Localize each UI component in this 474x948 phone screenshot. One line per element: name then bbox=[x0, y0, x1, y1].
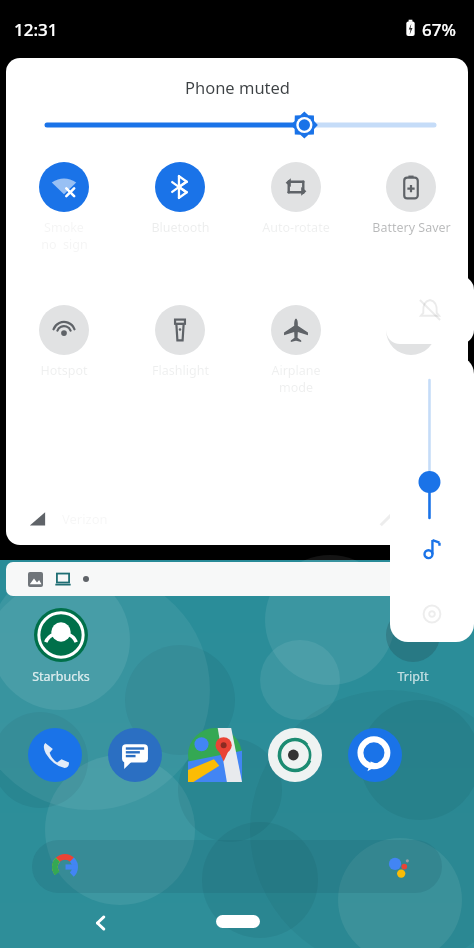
button[interactable]: Messages bbox=[108, 728, 162, 782]
staticText: 67% bbox=[422, 18, 456, 41]
staticText: Starbucks bbox=[32, 668, 90, 685]
button[interactable]: Auto-rotate bbox=[238, 162, 354, 236]
button[interactable]: Airplane mode bbox=[238, 305, 354, 396]
button[interactable]: Media output bbox=[418, 534, 446, 562]
button[interactable]: Notifications bbox=[6, 562, 468, 596]
button[interactable]: Home bbox=[216, 915, 260, 928]
button[interactable]: Do not disturb bbox=[354, 305, 468, 396]
staticText: TripIt bbox=[397, 668, 429, 685]
button[interactable]: Ringer mode muted bbox=[386, 276, 474, 344]
button[interactable]: Sound settings bbox=[420, 602, 444, 626]
button[interactable]: Search bbox=[32, 840, 442, 893]
button[interactable]: TripIt bbox=[380, 608, 446, 685]
staticText: 12:31 bbox=[14, 18, 58, 41]
button[interactable]: Brightness bbox=[6, 110, 468, 140]
staticText: disturb bbox=[390, 379, 432, 396]
button[interactable]: Media volume bbox=[390, 356, 474, 556]
staticText: mode bbox=[279, 379, 313, 396]
button[interactable]: Battery Saver bbox=[354, 162, 468, 236]
staticText: Phone muted bbox=[185, 76, 290, 98]
staticText: Auto-rotate bbox=[262, 219, 330, 236]
button[interactable]: Hotspot bbox=[6, 305, 122, 379]
staticText: Battery Saver bbox=[372, 219, 451, 236]
button[interactable]: WiFi off bbox=[6, 162, 122, 253]
staticText: Bluetooth bbox=[151, 219, 210, 236]
button[interactable]: Call recorder bbox=[268, 728, 322, 782]
staticText: Flashlight bbox=[152, 362, 209, 379]
button[interactable]: Phone bbox=[28, 728, 82, 782]
button[interactable]: Bluetooth bbox=[122, 162, 238, 236]
button[interactable]: Starbucks bbox=[28, 608, 94, 685]
button[interactable]: Flashlight bbox=[122, 305, 238, 379]
staticText: Hotspot bbox=[40, 362, 88, 379]
button[interactable]: Back bbox=[86, 908, 116, 938]
button[interactable]: Duo bbox=[348, 728, 402, 782]
button[interactable]: Maps bbox=[188, 728, 242, 782]
staticText: Airplane bbox=[271, 362, 321, 379]
staticText: Smoke bbox=[44, 219, 84, 236]
